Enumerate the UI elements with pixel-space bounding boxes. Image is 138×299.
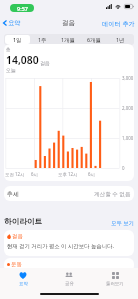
staticText: 1일 (13, 36, 22, 43)
staticText: 모두 보기 (111, 219, 134, 226)
staticText: 데이터 추가 (102, 19, 135, 27)
button[interactable]: 1일 (5, 35, 30, 44)
staticText: 14,080 (6, 53, 39, 67)
staticText: 요약 (8, 19, 21, 27)
staticText: 계산할 수 없음 (94, 190, 131, 198)
button[interactable]: 1년 (107, 35, 133, 44)
button[interactable]: 공유 (46, 268, 92, 290)
staticText: 오전 12시 (5, 171, 25, 177)
staticText: 1년 (116, 36, 125, 43)
staticText: 요약 (19, 281, 28, 287)
button[interactable]: 1주 (30, 35, 55, 44)
button[interactable]: 모두 보기 (110, 218, 135, 227)
staticText: 오늘 (6, 67, 16, 73)
button[interactable]: 둘러보기 (92, 268, 138, 290)
button[interactable]: 추세 (4, 186, 134, 201)
button[interactable]: 요약 (2, 17, 22, 29)
button[interactable]: 1개월 (55, 35, 81, 44)
button[interactable]: 6개월 (81, 35, 107, 44)
staticText: 둘러보기 (106, 281, 124, 287)
staticText: 오후 12시 (58, 171, 78, 177)
staticText: 현재 걷기 거리가 평소 이 시간보다 높습니다. (7, 242, 114, 249)
staticText: 공유 (65, 281, 74, 287)
staticText: 하이라이트 (4, 217, 42, 227)
staticText: 9:57 (17, 5, 28, 12)
staticText: 2,000 (122, 105, 134, 111)
staticText: 걸음 (62, 19, 76, 27)
staticText: 걸음 (40, 60, 50, 66)
button[interactable]: 데이터 추가 (101, 17, 136, 29)
staticText: 걸음 (12, 233, 23, 240)
button[interactable]: 걸음 (4, 230, 134, 256)
staticText: 1,000 (122, 135, 134, 141)
staticText: 추세 (7, 190, 19, 198)
staticText: 총 (6, 47, 11, 53)
staticText: 0 (122, 165, 125, 171)
staticText: 운동 (11, 261, 22, 268)
staticText: 6시 (88, 171, 95, 177)
button[interactable]: 요약 (0, 268, 46, 290)
staticText: 1개월 (61, 36, 75, 43)
staticText: 3,000 (122, 75, 134, 81)
staticText: 6개월 (87, 36, 101, 43)
staticText: 6시 (31, 171, 38, 177)
button[interactable]: 운동 (4, 258, 134, 272)
staticText: 1주 (38, 36, 47, 43)
